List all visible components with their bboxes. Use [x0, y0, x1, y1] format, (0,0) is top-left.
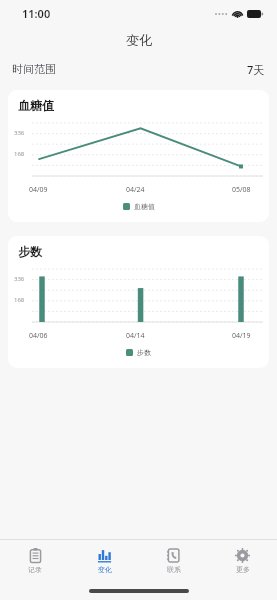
staticText: 记录 — [28, 565, 42, 574]
staticText: 时间范围 — [12, 62, 56, 76]
staticText: 05/08 — [232, 185, 251, 195]
button[interactable]: 变化 — [70, 540, 139, 582]
staticText: 04/09 — [29, 185, 48, 195]
staticText: 变化 — [98, 565, 112, 574]
button[interactable]: 时间范围 — [0, 54, 277, 84]
staticText: 168 — [14, 150, 25, 158]
staticText: 更多 — [236, 565, 250, 574]
staticText: 04/14 — [126, 331, 145, 341]
staticText: 联系 — [167, 565, 181, 574]
other: 变化 — [97, 548, 112, 563]
staticText: 7天 — [247, 62, 265, 77]
staticText: 步数 — [18, 244, 42, 259]
staticText: 168 — [14, 296, 25, 304]
staticText: 步数 — [137, 348, 151, 357]
button[interactable]: 更多 — [208, 540, 277, 582]
button[interactable]: 记录 — [0, 540, 70, 582]
other: 联系 — [166, 548, 181, 563]
other: 更多 — [235, 548, 250, 563]
staticText: 04/06 — [29, 331, 48, 341]
other: 记录 — [28, 548, 43, 563]
staticText: 336 — [14, 275, 25, 283]
staticText: 04/19 — [232, 331, 251, 341]
staticText: 血糖值 — [134, 202, 155, 211]
staticText: 04/24 — [126, 185, 145, 195]
staticText: 11:00 — [22, 6, 51, 21]
staticText: 血糖值 — [18, 98, 54, 113]
button[interactable]: 联系 — [139, 540, 208, 582]
staticText: 变化 — [126, 32, 152, 48]
staticText: 336 — [14, 129, 25, 137]
